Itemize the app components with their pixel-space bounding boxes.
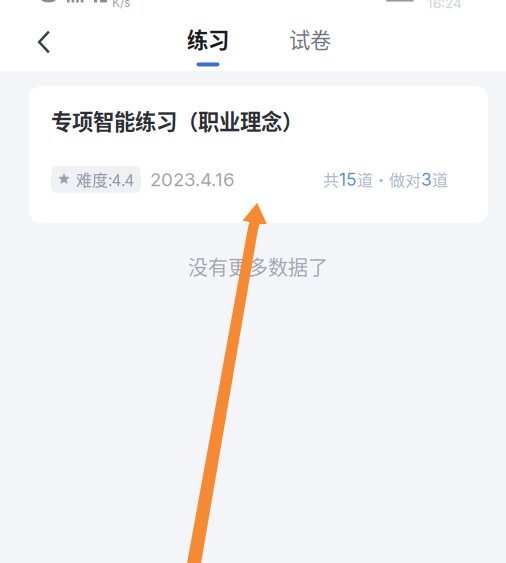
staticText: 16:24	[427, 0, 462, 12]
button[interactable]: Back	[18, 19, 70, 65]
staticText: 试卷	[289, 24, 331, 54]
staticText: 2023.4.16	[150, 168, 235, 191]
staticText: 专项智能练习（职业理念）	[51, 105, 303, 136]
staticText: 共	[323, 168, 339, 191]
staticText: 难度:4.4	[76, 168, 134, 191]
button[interactable]: 试卷	[277, 24, 343, 66]
staticText: 3	[421, 169, 432, 190]
staticText: 道	[432, 168, 448, 191]
staticText: 15	[339, 169, 357, 190]
button[interactable]: 专项智能练习（职业理念）	[29, 86, 488, 223]
button[interactable]: 练习	[175, 24, 241, 66]
staticText: 道·做对	[357, 168, 421, 191]
staticText: 练习	[187, 24, 229, 54]
staticText: K/s	[112, 0, 130, 10]
staticText: 没有更多数据了	[188, 252, 328, 281]
